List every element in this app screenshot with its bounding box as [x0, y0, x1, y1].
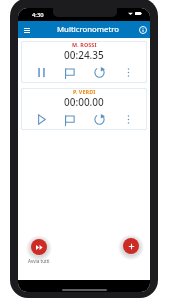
button[interactable]: Reset: [94, 114, 105, 125]
button[interactable]: Open navigation menu: [21, 24, 33, 36]
button[interactable]: More options: [123, 67, 134, 78]
button[interactable]: M. ROSSI: [21, 41, 147, 83]
button[interactable]: Lap: [64, 115, 75, 126]
button[interactable]: Info: [136, 23, 149, 36]
button[interactable]: More options: [123, 114, 134, 125]
staticText: P. VERDI: [73, 88, 96, 95]
staticText: 00:00.00: [64, 95, 104, 109]
button[interactable]: Reset: [94, 67, 105, 78]
button[interactable]: P. VERDI: [21, 88, 147, 130]
button[interactable]: Add stopwatch: [123, 238, 139, 254]
button[interactable]: Pause: [36, 114, 47, 125]
button[interactable]: Avvia tutti: [28, 239, 50, 264]
button[interactable]: Pause: [36, 67, 47, 78]
staticText: 4:30: [32, 11, 44, 19]
button[interactable]: Lap: [64, 68, 75, 79]
staticText: M. ROSSI: [72, 41, 97, 48]
staticText: 00:24.35: [64, 48, 104, 62]
staticText: Multicronometro: [57, 24, 120, 35]
staticText: Avvia tutti: [28, 258, 50, 264]
